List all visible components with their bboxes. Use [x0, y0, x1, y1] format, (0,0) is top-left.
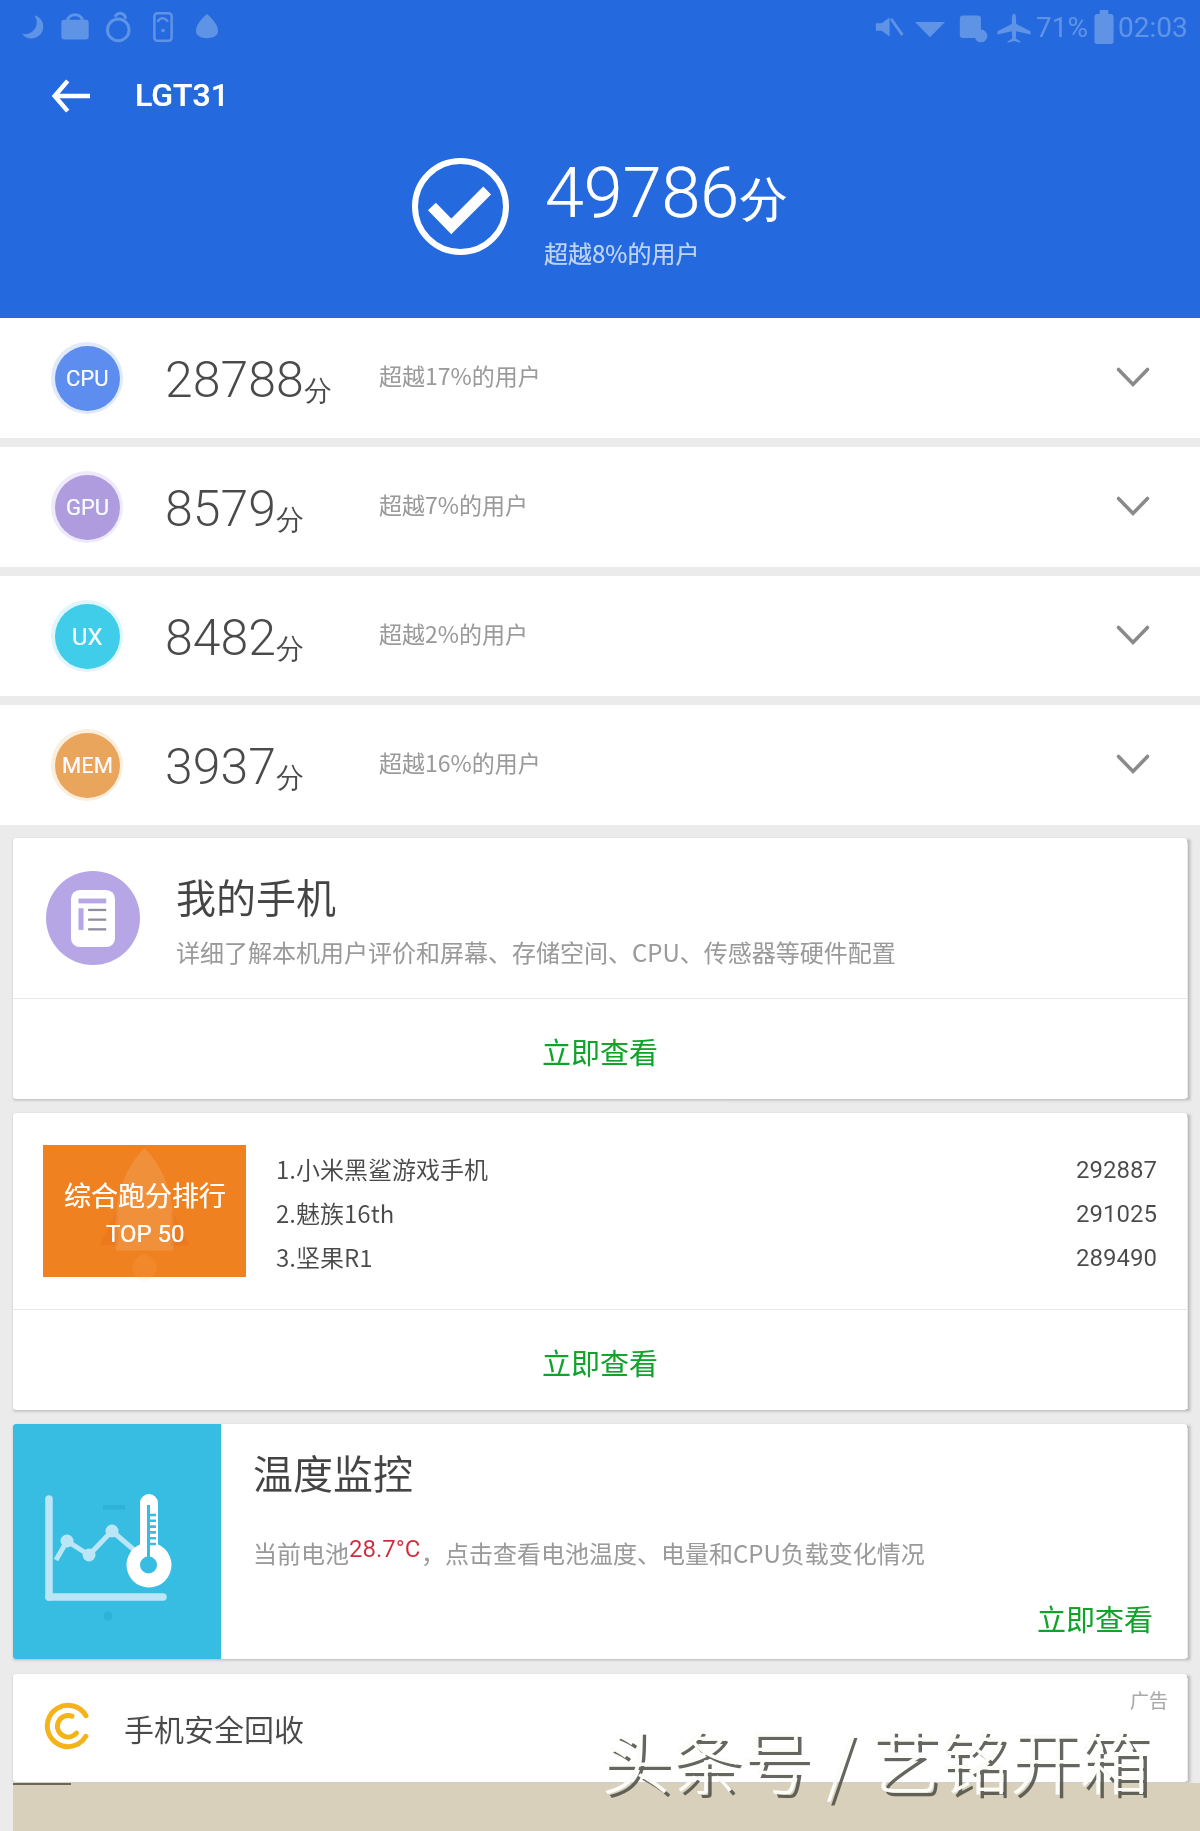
staticText: TOP 50	[106, 1220, 185, 1248]
button[interactable]: 我的手机	[13, 838, 1187, 998]
button[interactable]: Expand	[1103, 347, 1163, 407]
staticText: MEM	[62, 753, 113, 779]
staticText: 289490	[1076, 1244, 1157, 1272]
button[interactable]: GPU	[0, 447, 1200, 567]
staticText: 2.魅族16th	[276, 1195, 395, 1230]
button[interactable]: 手机安全回收	[13, 1674, 1187, 1782]
staticText: LGT31	[135, 76, 229, 114]
staticText: 当前电池	[253, 1535, 349, 1570]
staticText: 分	[304, 373, 332, 408]
staticText: 手机安全回收	[124, 1706, 304, 1749]
staticText: 3.坚果R1	[276, 1239, 373, 1274]
staticText: ，点击查看电池温度、电量和CPU负载变化情况	[421, 1535, 925, 1570]
staticText: 8482	[165, 609, 276, 668]
button[interactable]: 立即查看	[1037, 1597, 1154, 1639]
staticText: 立即查看	[542, 1030, 659, 1072]
staticText: 广告	[1130, 1686, 1169, 1714]
button[interactable]: MEM	[0, 705, 1200, 825]
staticText: 02:03	[1118, 11, 1188, 44]
staticText: 1.小米黑鲨游戏手机	[276, 1151, 488, 1186]
button[interactable]: 温度监控	[13, 1424, 1187, 1659]
button[interactable]: UX	[0, 576, 1200, 696]
staticText: 28788	[165, 351, 304, 410]
staticText: 头条号 / 艺铭开箱	[601, 1708, 1150, 1809]
button[interactable]: CPU	[0, 318, 1200, 438]
staticText: 292887	[1076, 1156, 1157, 1184]
staticText: 详细了解本机用户评价和屏幕、存储空间、CPU、传感器等硬件配置	[176, 934, 896, 969]
staticText: 71%	[1036, 11, 1088, 44]
staticText: CPU	[66, 366, 109, 392]
staticText: 49786	[545, 152, 740, 234]
button[interactable]: Expand	[1103, 476, 1163, 536]
staticText: 分	[276, 631, 304, 666]
button[interactable]: 综合跑分排行	[13, 1113, 1187, 1309]
staticText: 超越16%的用户	[379, 745, 541, 778]
staticText: GPU	[66, 495, 110, 521]
button[interactable]: Expand	[1103, 734, 1163, 794]
staticText: 立即查看	[1037, 1597, 1154, 1639]
staticText: 立即查看	[542, 1341, 659, 1383]
staticText: 分	[276, 502, 304, 537]
staticText: 291025	[1076, 1200, 1157, 1228]
button[interactable]: 立即查看	[13, 1310, 1187, 1410]
button[interactable]: Expand	[1103, 605, 1163, 665]
staticText: 超越17%的用户	[379, 358, 541, 391]
staticText: 3937	[165, 738, 276, 797]
staticText: 28.7°C	[349, 1535, 421, 1563]
staticText: 超越2%的用户	[379, 616, 528, 649]
staticText: 分	[276, 760, 304, 795]
staticText: 分	[740, 170, 788, 230]
staticText: 我的手机	[176, 867, 336, 925]
staticText: 温度监控	[253, 1443, 413, 1501]
staticText: 8579	[165, 480, 276, 539]
staticText: 超越7%的用户	[379, 487, 528, 520]
staticText: 超越8%的用户	[544, 235, 700, 270]
button[interactable]: 立即查看	[13, 999, 1187, 1099]
staticText: UX	[72, 623, 103, 651]
button[interactable]: Back	[42, 66, 102, 126]
staticText: 综合跑分排行	[64, 1175, 226, 1214]
